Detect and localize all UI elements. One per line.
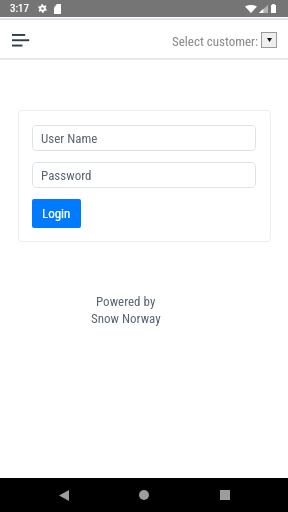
button[interactable]: Recent apps xyxy=(208,478,242,512)
staticText: User Name xyxy=(41,131,98,146)
button[interactable]: Back xyxy=(47,478,81,512)
button[interactable]: User Name xyxy=(32,125,256,151)
staticText: 3:17 xyxy=(10,2,29,15)
button[interactable]: Home xyxy=(127,478,161,512)
button[interactable]: Menu xyxy=(6,25,36,55)
staticText: Login xyxy=(42,206,71,221)
staticText: Select customer: xyxy=(172,34,259,49)
staticText: Snow Norway xyxy=(91,311,161,326)
button[interactable]: Password xyxy=(32,162,256,188)
staticText: Powered by xyxy=(96,294,156,309)
staticText: Password xyxy=(41,168,92,183)
button[interactable]: Select customer: xyxy=(172,33,277,49)
button[interactable]: Login xyxy=(32,199,81,228)
